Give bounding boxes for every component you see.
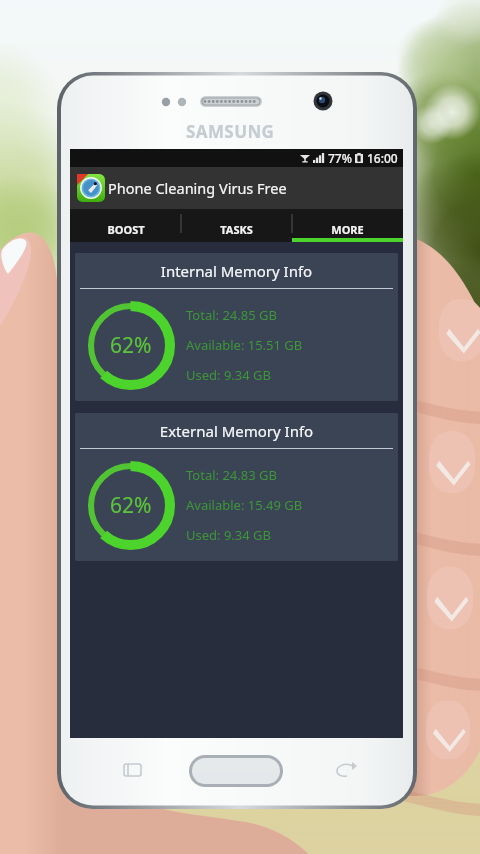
button[interactable]: Internal Memory Info <box>75 253 398 401</box>
staticText: 62% <box>110 331 152 360</box>
staticText: Used: 9.34 GB <box>186 526 272 544</box>
staticText: Internal Memory Info <box>75 261 398 281</box>
staticText: BOOST <box>107 222 145 237</box>
staticText: 77% <box>328 150 352 166</box>
staticText: Available: 15.51 GB <box>186 336 303 354</box>
staticText: Used: 9.34 GB <box>186 366 272 384</box>
staticText: Total: 24.85 GB <box>186 306 277 324</box>
staticText: Available: 15.49 GB <box>186 496 303 514</box>
staticText: 16:00 <box>367 150 398 166</box>
staticText: Total: 24.83 GB <box>186 466 277 484</box>
staticText: 62% <box>110 491 152 520</box>
button[interactable]: BOOST <box>70 209 181 242</box>
staticText: External Memory Info <box>75 421 398 441</box>
staticText: SAMSUNG <box>186 120 275 143</box>
button[interactable]: External Memory Info <box>75 413 398 561</box>
button[interactable]: TASKS <box>181 209 292 242</box>
staticText: MORE <box>331 222 364 237</box>
staticText: Phone Cleaning Virus Free <box>108 178 287 198</box>
button[interactable]: Phone Cleaning Virus Free <box>70 167 403 209</box>
staticText: TASKS <box>220 222 253 237</box>
button[interactable]: MORE <box>292 209 403 242</box>
